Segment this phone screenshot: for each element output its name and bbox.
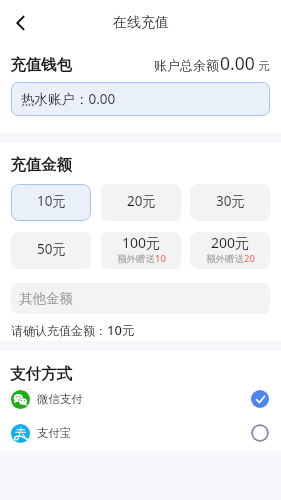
staticText: 0.00 — [220, 51, 255, 75]
staticText: 10元 — [107, 321, 135, 339]
button[interactable]: 30元 — [190, 184, 270, 221]
button[interactable]: Back — [0, 2, 42, 44]
button[interactable]: 50元 — [11, 232, 91, 269]
staticText: 充值金额 — [10, 155, 72, 175]
button[interactable]: 微信支付 — [0, 382, 281, 416]
staticText: 20 — [244, 252, 255, 265]
staticText: 支付方式 — [10, 364, 72, 384]
staticText: 30元 — [216, 192, 245, 210]
staticText: 充值钱包 — [10, 55, 72, 75]
staticText: 请确认充值金额： — [11, 323, 107, 338]
button[interactable]: 其他金额 — [11, 283, 270, 314]
staticText: 其他金额 — [19, 290, 73, 307]
staticText: 200元 — [211, 233, 250, 252]
button[interactable]: 20元 — [101, 184, 181, 221]
staticText: 100元 — [122, 233, 161, 252]
button[interactable]: 100元 — [101, 232, 181, 269]
staticText: 元 — [258, 59, 270, 73]
button[interactable]: 支付宝 — [0, 416, 281, 450]
staticText: 10元 — [37, 192, 66, 210]
staticText: 10 — [155, 252, 166, 265]
button[interactable]: 热水账户：0.00 — [11, 82, 270, 116]
staticText: 20元 — [127, 192, 156, 210]
button[interactable]: 200元 — [190, 232, 270, 269]
button[interactable]: 10元 — [11, 184, 91, 221]
staticText: 在线充值 — [113, 14, 169, 32]
staticText: 额外赠送 — [117, 253, 155, 265]
staticText: 账户总余额 — [154, 57, 219, 73]
staticText: 50元 — [37, 240, 66, 258]
staticText: 支付宝 — [37, 426, 72, 440]
staticText: 额外赠送 — [206, 253, 244, 265]
staticText: 微信支付 — [37, 392, 83, 406]
staticText: 热水账户：0.00 — [21, 90, 116, 108]
